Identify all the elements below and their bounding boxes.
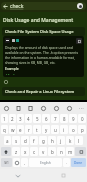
staticText: u (54, 127, 57, 133)
button[interactable]: e (17, 125, 24, 134)
staticText: . (66, 160, 68, 165)
button[interactable]: v (39, 147, 47, 156)
staticText: x (24, 149, 27, 155)
button[interactable]: Check and Repair a Linux Filesystem (2, 87, 85, 96)
button[interactable]: , (21, 158, 28, 167)
staticText: 1 (3, 116, 6, 122)
button[interactable]: z (12, 147, 20, 156)
staticText: 3 (19, 116, 22, 122)
staticText: p (81, 127, 84, 133)
button[interactable]: f (30, 136, 38, 145)
button[interactable]: Space (29, 158, 62, 167)
staticText: 2 (11, 116, 14, 122)
staticText: 6 (45, 116, 48, 122)
button[interactable]: j (57, 136, 65, 145)
button[interactable]: s (12, 136, 20, 145)
button[interactable]: 2 (9, 114, 16, 123)
staticText: Example (5, 66, 19, 71)
button[interactable]: More (78, 104, 85, 111)
button[interactable]: u (51, 125, 59, 134)
staticText: t (36, 127, 38, 133)
button[interactable]: Check File System Disk Space Usage (2, 27, 85, 36)
button[interactable]: !#1 (1, 158, 12, 167)
staticText: o (72, 127, 75, 133)
button[interactable]: t (33, 125, 41, 134)
button[interactable]: h (48, 136, 56, 145)
staticText: 9 (72, 116, 75, 122)
button[interactable]: 0 (78, 114, 86, 123)
button[interactable]: b (48, 147, 56, 156)
button[interactable]: g (39, 136, 47, 145)
button[interactable]: 3 (17, 114, 24, 123)
button[interactable]: Settings (65, 104, 73, 112)
button[interactable]: check (10, 3, 24, 10)
button[interactable]: Copy (76, 38, 82, 44)
staticText: 7 (54, 116, 57, 122)
staticText: 5 (36, 116, 39, 122)
button[interactable]: Emoji (13, 158, 20, 167)
button[interactable]: . (63, 158, 70, 167)
staticText: y (45, 127, 48, 133)
button[interactable]: 5 (33, 114, 41, 123)
button[interactable]: 9 (69, 114, 77, 123)
button[interactable]: Voice input (2, 104, 10, 112)
button[interactable]: k (66, 136, 74, 145)
button[interactable]: Back (1, 2, 9, 10)
button[interactable]: Hide keyboard (14, 172, 21, 179)
button[interactable]: 8 (60, 114, 68, 123)
button[interactable]: n (57, 147, 65, 156)
staticText: j (60, 138, 62, 144)
button[interactable]: c (30, 147, 38, 156)
button[interactable]: Backspace (75, 147, 86, 156)
button[interactable]: Account (77, 3, 83, 9)
button[interactable]: 1 (1, 114, 8, 123)
button[interactable]: y (42, 125, 50, 134)
staticText: , (24, 160, 26, 165)
button[interactable]: Shift (1, 147, 11, 156)
button[interactable]: o (69, 125, 77, 134)
button[interactable]: Clipboard (14, 104, 22, 112)
staticText: 4 (27, 116, 30, 122)
staticText: d (24, 138, 27, 144)
button[interactable]: r (25, 125, 32, 134)
button[interactable]: 4 (25, 114, 32, 123)
staticText: i (63, 127, 65, 133)
button[interactable]: l (75, 136, 83, 145)
staticText: c (33, 149, 36, 155)
button[interactable]: 7 (51, 114, 59, 123)
staticText: Check File System Disk Space Usage (5, 29, 74, 34)
staticText: Done (74, 161, 83, 165)
button[interactable]: w (9, 125, 16, 134)
button[interactable]: Recent apps (60, 172, 67, 179)
staticText: Displays the amount of disk space used a… (5, 45, 82, 65)
button[interactable]: Stickers (39, 104, 47, 112)
staticText: m (68, 149, 73, 155)
button[interactable]: Done (71, 158, 86, 167)
staticText: g (42, 138, 45, 144)
button[interactable]: Copy command (2, 78, 10, 86)
button[interactable]: GIF (52, 104, 60, 112)
staticText: b (51, 149, 54, 155)
staticText: df -h (5, 73, 16, 75)
staticText: Check and Repair a Linux Filesystem (5, 89, 75, 94)
button[interactable]: d (21, 136, 29, 145)
staticText: 0 (81, 116, 84, 122)
button[interactable]: Translate (26, 104, 34, 112)
button[interactable]: i (60, 125, 68, 134)
button[interactable]: 6 (42, 114, 50, 123)
button[interactable]: q (1, 125, 8, 134)
button[interactable]: x (21, 147, 29, 156)
staticText: ⋯ (79, 105, 84, 111)
button[interactable]: m (66, 147, 74, 156)
staticText: z (15, 149, 18, 155)
staticText: k (69, 138, 72, 144)
staticText: n (60, 149, 63, 155)
staticText: w (11, 127, 15, 133)
button[interactable]: p (78, 125, 86, 134)
staticText: l (78, 138, 80, 144)
staticText: q (3, 127, 6, 133)
staticText: s (15, 138, 18, 144)
staticText: 8 (63, 116, 66, 122)
button[interactable]: a (4, 136, 11, 145)
staticText: r (28, 127, 30, 133)
